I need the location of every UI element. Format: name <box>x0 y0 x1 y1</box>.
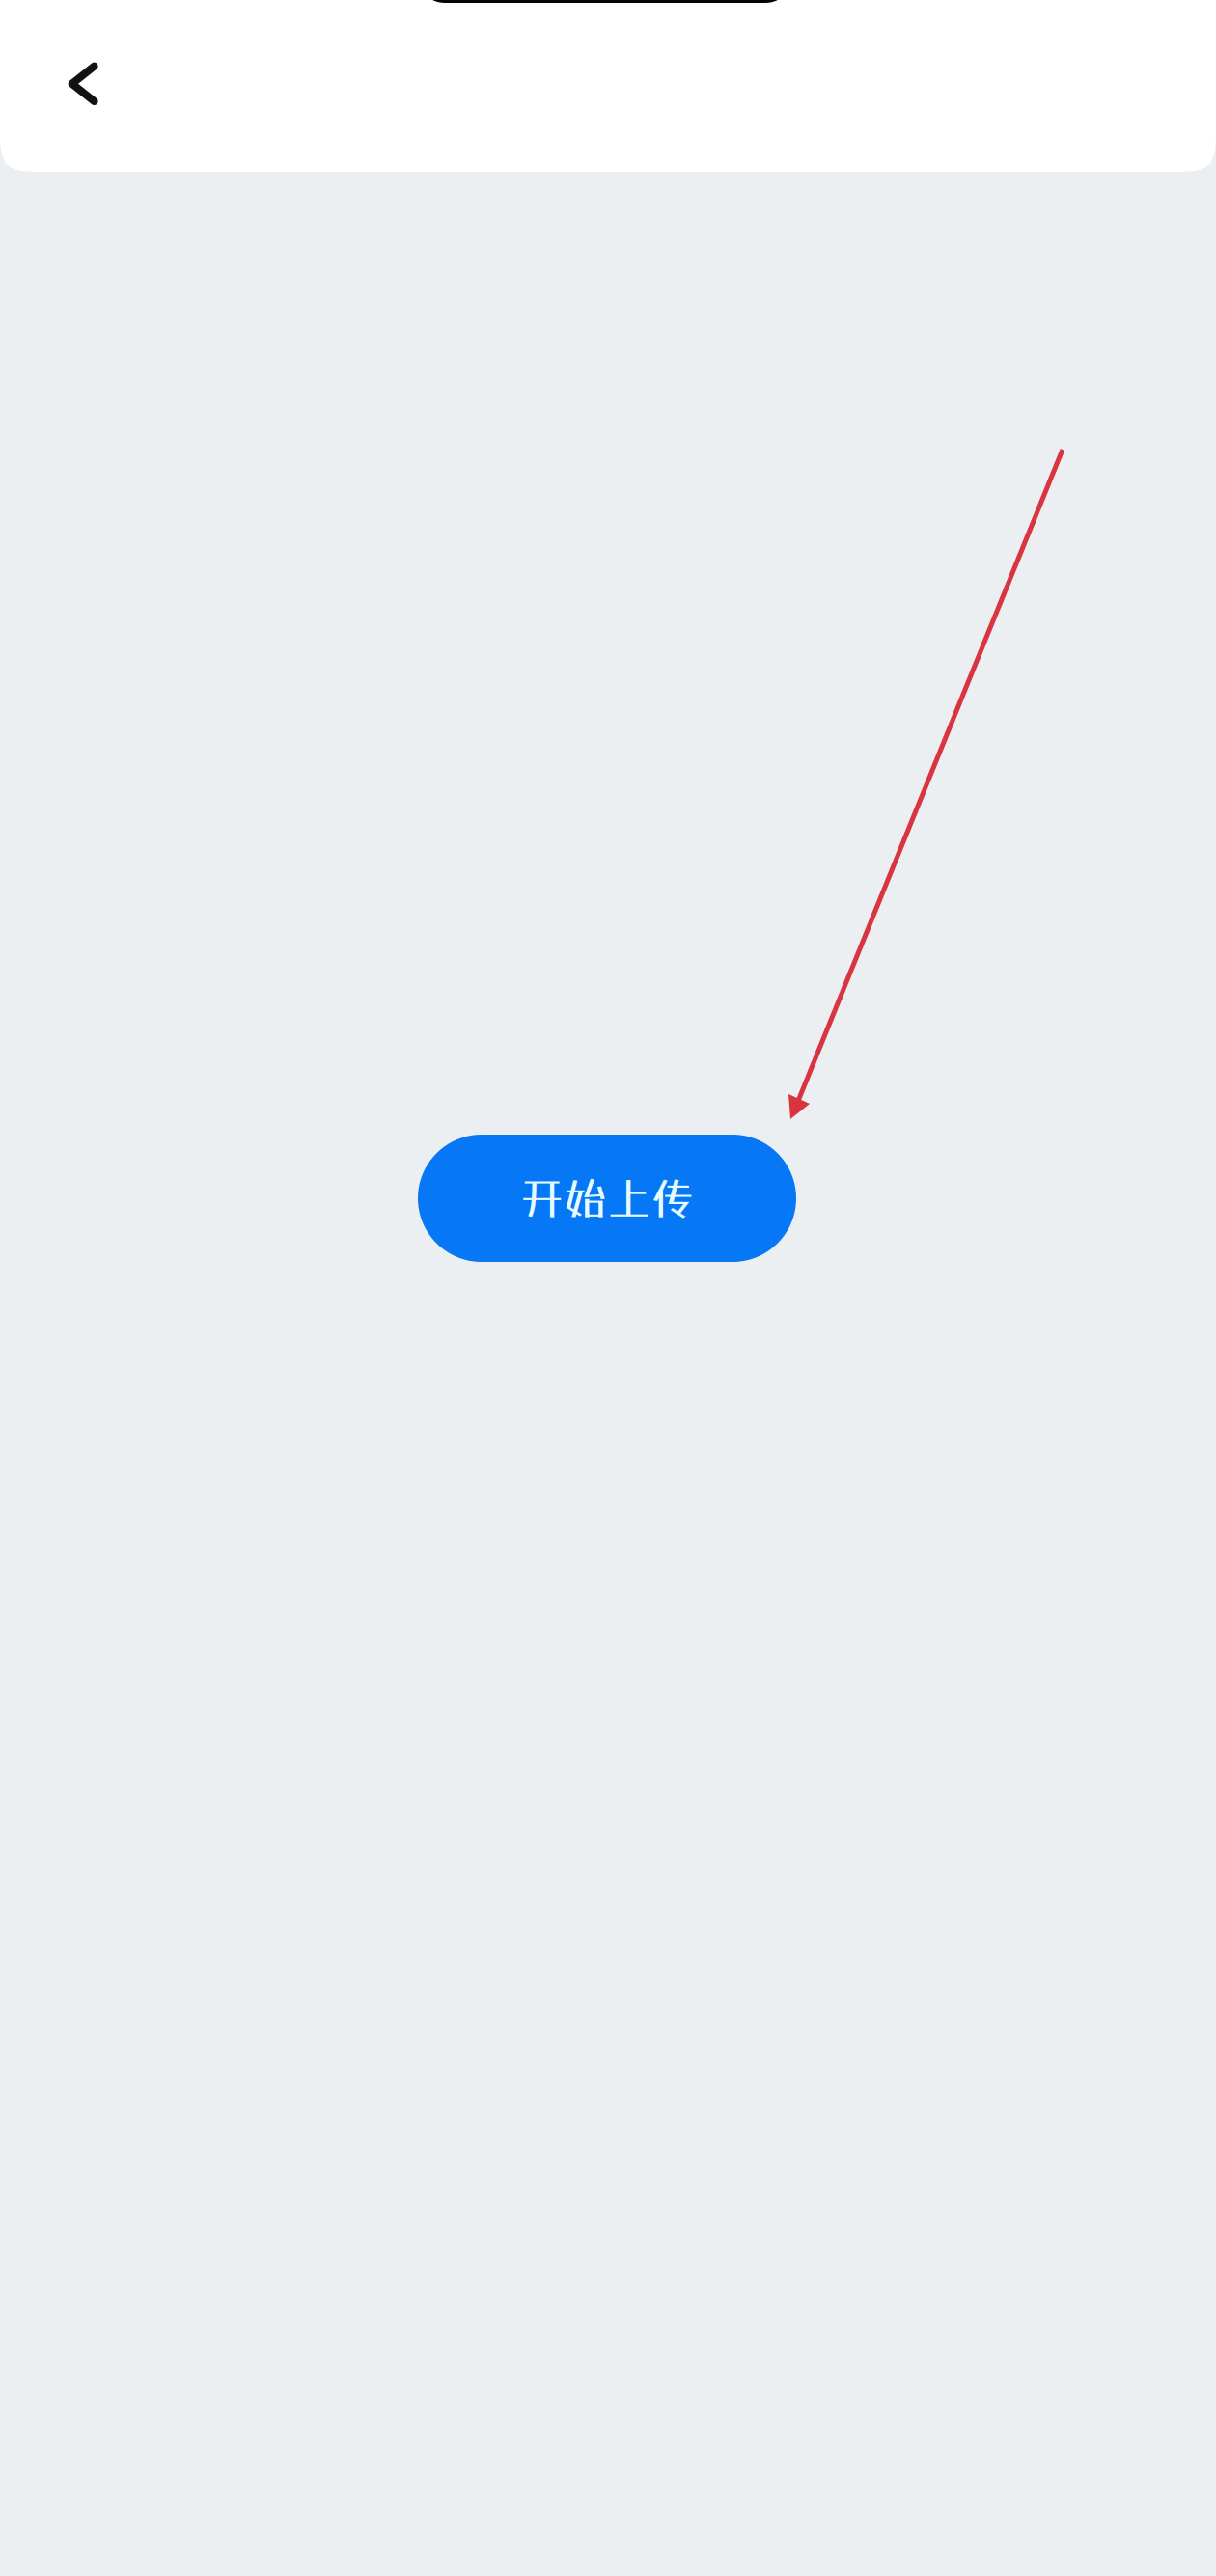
staticText: 开始上传 <box>520 1173 694 1224</box>
button[interactable]: 开始上传 <box>418 1135 796 1262</box>
button[interactable]: Back <box>0 0 162 172</box>
